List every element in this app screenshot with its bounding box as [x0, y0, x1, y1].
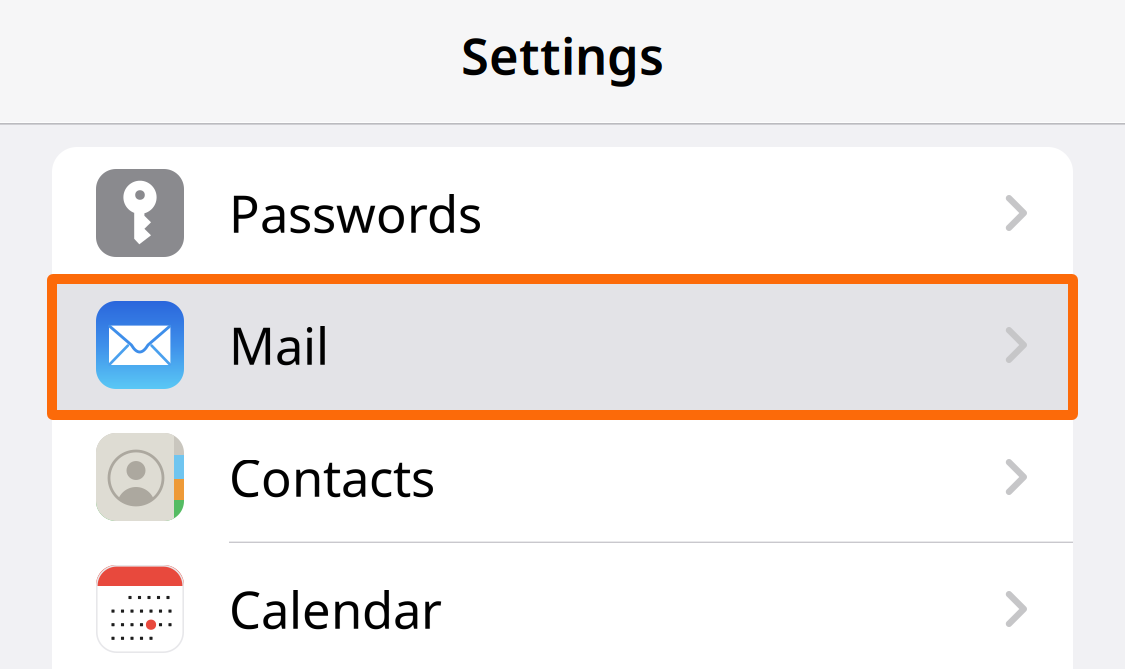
- staticText: Contacts: [229, 443, 435, 511]
- staticText: Mail: [229, 311, 329, 379]
- button[interactable]: Passwords: [52, 147, 1073, 279]
- button[interactable]: Calendar: [52, 543, 1073, 669]
- button[interactable]: Mail: [52, 279, 1073, 411]
- staticText: Passwords: [229, 179, 482, 247]
- staticText: Settings: [461, 21, 664, 89]
- button[interactable]: Contacts: [52, 411, 1073, 543]
- staticText: Calendar: [229, 575, 442, 643]
